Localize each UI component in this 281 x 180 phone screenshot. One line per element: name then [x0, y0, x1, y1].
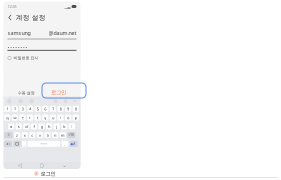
staticText: ⇧ — [7, 133, 10, 137]
button[interactable]: g — [38, 123, 45, 129]
button[interactable]: f — [31, 123, 37, 129]
staticText: 4 — [29, 106, 31, 111]
staticText: samsung — [7, 29, 30, 36]
button[interactable]: 1 — [4, 106, 10, 112]
staticText: . — [64, 141, 65, 146]
staticText: d — [25, 124, 27, 129]
button[interactable]: 3 — [19, 106, 26, 112]
button[interactable]: y — [42, 114, 48, 121]
button[interactable]: z — [14, 132, 20, 138]
button[interactable]: . — [61, 141, 68, 147]
staticText: m — [61, 132, 65, 138]
button[interactable]: i — [57, 114, 64, 121]
button[interactable]: 8 — [57, 106, 64, 112]
button[interactable]: q — [4, 114, 10, 121]
button[interactable]: 비밀번호 표시 — [8, 55, 77, 61]
staticText: 8 — [59, 106, 61, 111]
button[interactable]: x — [22, 132, 28, 138]
button[interactable]: 0 — [73, 106, 79, 112]
staticText: 3 — [21, 106, 23, 111]
button[interactable]: n — [52, 132, 58, 138]
staticText: o — [67, 115, 69, 120]
button[interactable]: d — [23, 123, 29, 129]
staticText: i — [60, 115, 61, 120]
staticText: @daum.net — [48, 29, 76, 36]
staticText: n — [54, 132, 56, 138]
button[interactable]: o — [65, 114, 71, 121]
button[interactable]: b — [44, 132, 51, 138]
button[interactable]: , — [22, 141, 26, 147]
button[interactable]: 9 — [65, 106, 71, 112]
staticText: q — [6, 115, 8, 120]
button[interactable]: j — [54, 123, 60, 129]
staticText: y — [44, 115, 46, 120]
staticText: b — [46, 132, 48, 138]
button[interactable]: m — [60, 132, 66, 138]
button[interactable]: Hide keyboard — [58, 162, 70, 169]
button[interactable]: e — [19, 114, 26, 121]
button[interactable]: u — [50, 114, 56, 121]
staticText: ○ — [39, 162, 44, 168]
button[interactable]: 로그인 — [45, 86, 71, 99]
staticText: l — [71, 124, 72, 129]
staticText: ◁ — [18, 162, 22, 168]
staticText: , — [24, 141, 25, 146]
button[interactable]: v — [37, 132, 43, 138]
staticText: v — [39, 132, 41, 138]
button[interactable]: c — [29, 132, 35, 138]
button[interactable]: h — [46, 123, 52, 129]
staticText: s — [18, 124, 20, 129]
staticText: ⑧ — [34, 171, 39, 177]
button[interactable]: 4 — [27, 106, 33, 112]
staticText: 7 — [52, 106, 54, 111]
button[interactable]: 6 — [42, 106, 48, 112]
button[interactable]: 5 — [35, 106, 41, 112]
staticText: 로그인 — [51, 89, 66, 96]
button[interactable]: t — [35, 114, 41, 121]
staticText: ⌄ — [62, 162, 66, 168]
button[interactable]: s — [16, 123, 22, 129]
staticText: 9 — [67, 106, 69, 111]
staticText: j — [56, 124, 57, 129]
button[interactable]: 수동 설정 — [17, 87, 36, 98]
staticText: z — [16, 132, 18, 138]
staticText: 비밀번호 표시 — [13, 55, 38, 60]
button[interactable]: 2 — [12, 106, 18, 112]
button[interactable]: r — [27, 114, 33, 121]
button[interactable]: l — [69, 123, 75, 129]
button[interactable]: Space — [27, 141, 60, 147]
staticText: p — [75, 115, 77, 120]
staticText: 2 — [14, 106, 16, 111]
staticText: 계정 설정 — [16, 13, 46, 22]
staticText: c — [31, 132, 33, 138]
staticText: t — [37, 115, 38, 120]
staticText: 12:45 — [7, 4, 16, 9]
button[interactable]: a — [8, 123, 14, 129]
staticText: 5 — [37, 106, 39, 111]
staticText: ⌫ — [68, 133, 74, 137]
staticText: 로그인 — [40, 170, 55, 177]
button[interactable]: 7 — [50, 106, 56, 112]
button[interactable]: Change language — [13, 141, 21, 147]
button[interactable]: Back — [14, 162, 26, 169]
button[interactable]: p — [73, 114, 79, 121]
button[interactable]: Home — [36, 162, 48, 169]
staticText: h — [48, 124, 50, 129]
button[interactable]: Return — [70, 141, 78, 147]
staticText: e — [21, 115, 23, 120]
button[interactable]: ⌫ — [67, 132, 76, 138]
button[interactable]: ⇧ — [4, 132, 13, 138]
staticText: f — [33, 124, 34, 129]
staticText: 수동 설정 — [18, 90, 35, 95]
staticText: 6 — [44, 106, 46, 111]
staticText: 1 — [6, 106, 8, 111]
button[interactable]: w — [12, 114, 18, 121]
staticText: w — [13, 115, 16, 120]
button[interactable]: Back — [8, 11, 12, 23]
button[interactable]: !#1 — [4, 141, 12, 147]
staticText: ▁▃ — [64, 4, 70, 9]
staticText: r — [29, 115, 31, 120]
staticText: g — [40, 124, 42, 129]
staticText: u — [52, 115, 54, 120]
button[interactable]: k — [61, 123, 67, 129]
